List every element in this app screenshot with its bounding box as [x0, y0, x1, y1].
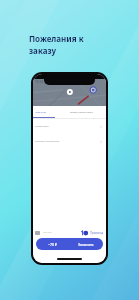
- staticText: заказу: [29, 45, 57, 56]
- button[interactable]: Заплатить такси другому: [33, 134, 106, 149]
- staticText: Пожелания: [35, 111, 47, 114]
- button[interactable]: Payment method: [35, 231, 40, 235]
- staticText: Время, номер рейса: [70, 111, 93, 114]
- button[interactable]: Комментарий: [33, 119, 106, 134]
- button[interactable]: Пожелания: [33, 106, 68, 118]
- staticText: 15:14: [35, 80, 44, 84]
- staticText: Пожелания к: [29, 33, 84, 44]
- staticText: Заплатить такси другому: [35, 140, 60, 143]
- button[interactable]: ~70 ₽: [36, 238, 103, 250]
- staticText: •••• ••••: [43, 231, 52, 235]
- button[interactable]: Время, номер рейса: [68, 106, 106, 118]
- staticText: Комментарий: [35, 125, 49, 128]
- staticText: Заказать: [78, 242, 94, 247]
- button[interactable]: Промокод: [81, 230, 103, 236]
- staticText: Промокод: [90, 231, 103, 235]
- staticText: ~70 ₽: [48, 242, 58, 247]
